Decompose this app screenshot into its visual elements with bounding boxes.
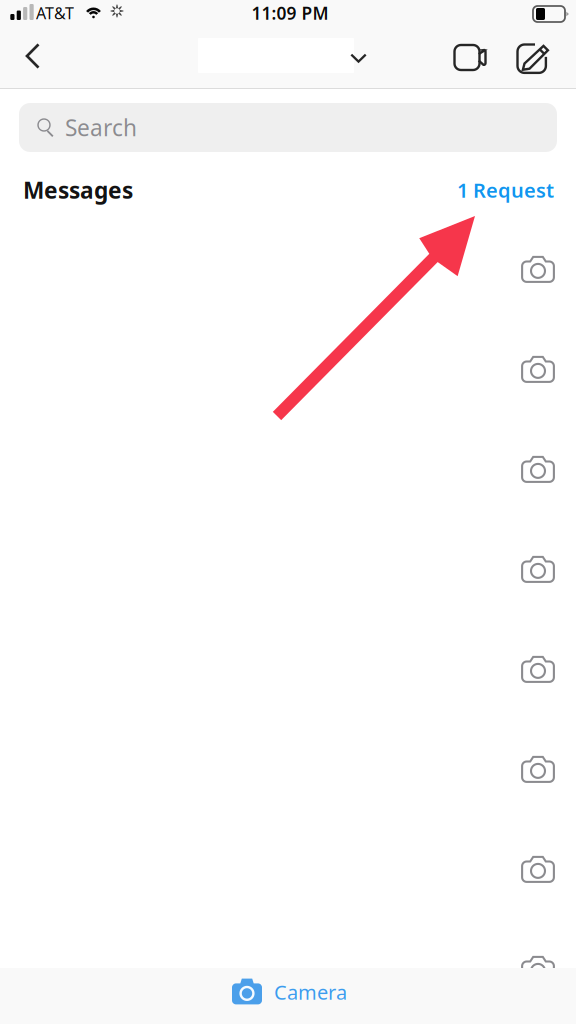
staticText: 11:09 PM [251, 1, 328, 24]
staticText: AT&T [36, 2, 74, 24]
button[interactable] [0, 618, 576, 718]
button[interactable] [0, 418, 576, 518]
button[interactable]: Video call [447, 34, 495, 82]
button[interactable]: 1 Request [457, 177, 554, 203]
button[interactable] [0, 518, 576, 618]
button[interactable]: Back [7, 34, 59, 78]
button[interactable] [0, 818, 576, 918]
button[interactable]: Camera [0, 968, 576, 1024]
button[interactable] [0, 318, 576, 418]
button[interactable] [0, 918, 576, 1018]
staticText: Search [65, 112, 137, 142]
button[interactable]: New message [510, 35, 558, 83]
button[interactable] [0, 718, 576, 818]
button[interactable] [0, 218, 576, 318]
staticText: Messages [23, 175, 133, 205]
button[interactable]: Search [19, 103, 557, 152]
button[interactable] [198, 38, 368, 73]
staticText: 1 Request [457, 177, 554, 203]
staticText: Camera [274, 979, 347, 1005]
